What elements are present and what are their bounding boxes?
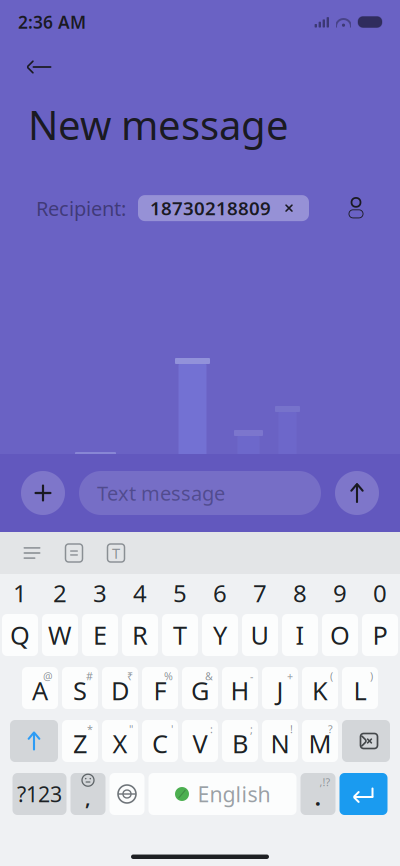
staticText: Y [213,618,227,652]
staticText: ( [330,669,333,683]
staticText: : [210,722,213,736]
button[interactable]: O [322,614,358,656]
staticText: ; [250,722,253,736]
staticText: 4 [133,577,147,609]
button[interactable]: % [142,667,178,709]
staticText: & [205,669,213,683]
button[interactable]: Choose contact [340,193,372,223]
staticText: V [192,727,207,760]
button[interactable]: Q [2,614,38,656]
button[interactable]: ) [342,667,378,709]
staticText: ? [328,722,333,736]
button[interactable]: I [282,614,318,656]
staticText: U [250,618,269,652]
button[interactable]: Emoji and comma [70,773,105,815]
button[interactable]: U [242,614,278,656]
staticText: Z [73,727,87,760]
staticText: 2 [53,577,67,609]
button[interactable]: Text tools [104,542,128,564]
button[interactable]: 6 [200,578,240,608]
button[interactable]: 0 [360,578,400,608]
staticText: @ [43,669,53,683]
staticText: " [129,722,133,736]
button[interactable]: W [42,614,78,656]
button[interactable]: Y [202,614,238,656]
button[interactable]: 7 [240,578,280,608]
button[interactable]: Send [335,471,379,515]
button[interactable]: P [362,614,398,656]
staticText: , [85,784,91,811]
staticText: A [32,674,48,707]
staticText: 9 [333,577,347,609]
staticText: 6 [213,577,227,609]
button[interactable]: & [182,667,218,709]
button[interactable]: ! [262,720,298,762]
button[interactable]: ?123 [12,773,66,815]
staticText: - [250,669,253,683]
button[interactable]: ; [222,720,258,762]
staticText: P [372,618,387,652]
staticText: L [353,674,366,707]
staticText: X [112,727,127,760]
button[interactable]: Back [22,50,62,84]
staticText: I [295,618,304,652]
staticText: Text message [97,480,225,506]
button[interactable]: # [62,667,98,709]
button[interactable]: @ [22,667,58,709]
staticText: ?123 [17,780,62,808]
button[interactable]: E [82,614,118,656]
button[interactable]: Clipboard [62,542,86,564]
button[interactable]: - [222,667,258,709]
button[interactable]: R [122,614,158,656]
staticText: W [48,618,72,652]
button[interactable]: 4 [120,578,160,608]
staticText: ' [171,722,173,736]
staticText: C [152,727,168,760]
button[interactable]: Enter [339,773,387,815]
staticText: G [191,674,209,707]
button[interactable]: 1 [0,578,40,608]
staticText: ) [370,669,373,683]
button[interactable]: 3 [80,578,120,608]
button[interactable]: Remove recipient [281,200,297,216]
button[interactable]: Shift [10,720,58,762]
button[interactable]: 2 [40,578,80,608]
staticText: B [232,727,248,760]
button[interactable]: ? [302,720,338,762]
staticText: * [87,722,93,736]
staticText: # [86,669,93,683]
button[interactable]: " [102,720,138,762]
button[interactable]: Text message [79,471,321,515]
button[interactable]: 8 [280,578,320,608]
button[interactable]: 5 [160,578,200,608]
button[interactable]: : [182,720,218,762]
button[interactable]: T [162,614,198,656]
staticText: S [73,674,87,707]
staticText: H [230,674,249,707]
staticText: 7 [253,577,267,609]
staticText: 5 [173,577,187,609]
button[interactable]: + [262,667,298,709]
button[interactable]: Switch keyboard language [109,773,144,815]
button[interactable]: Add attachment [21,471,65,515]
button[interactable]: ₹ [102,667,138,709]
staticText: M [308,727,331,760]
staticText: 3 [93,577,107,609]
staticText: T [112,543,120,563]
button[interactable]: Space [148,773,296,815]
staticText: 0 [373,577,387,609]
staticText: O [330,618,350,652]
staticText: J [276,674,283,707]
button[interactable]: 9 [320,578,360,608]
staticText: English [197,780,270,808]
staticText: R [132,618,148,652]
staticText: T [173,618,187,652]
button[interactable]: ( [302,667,338,709]
button[interactable]: Backspace [342,720,390,762]
staticText: E [93,618,107,652]
button[interactable]: ' [142,720,178,762]
button[interactable]: ,!? [300,773,335,815]
button[interactable]: * [62,720,98,762]
staticText: + [287,669,293,683]
button[interactable]: Keyboard menu [20,542,44,564]
